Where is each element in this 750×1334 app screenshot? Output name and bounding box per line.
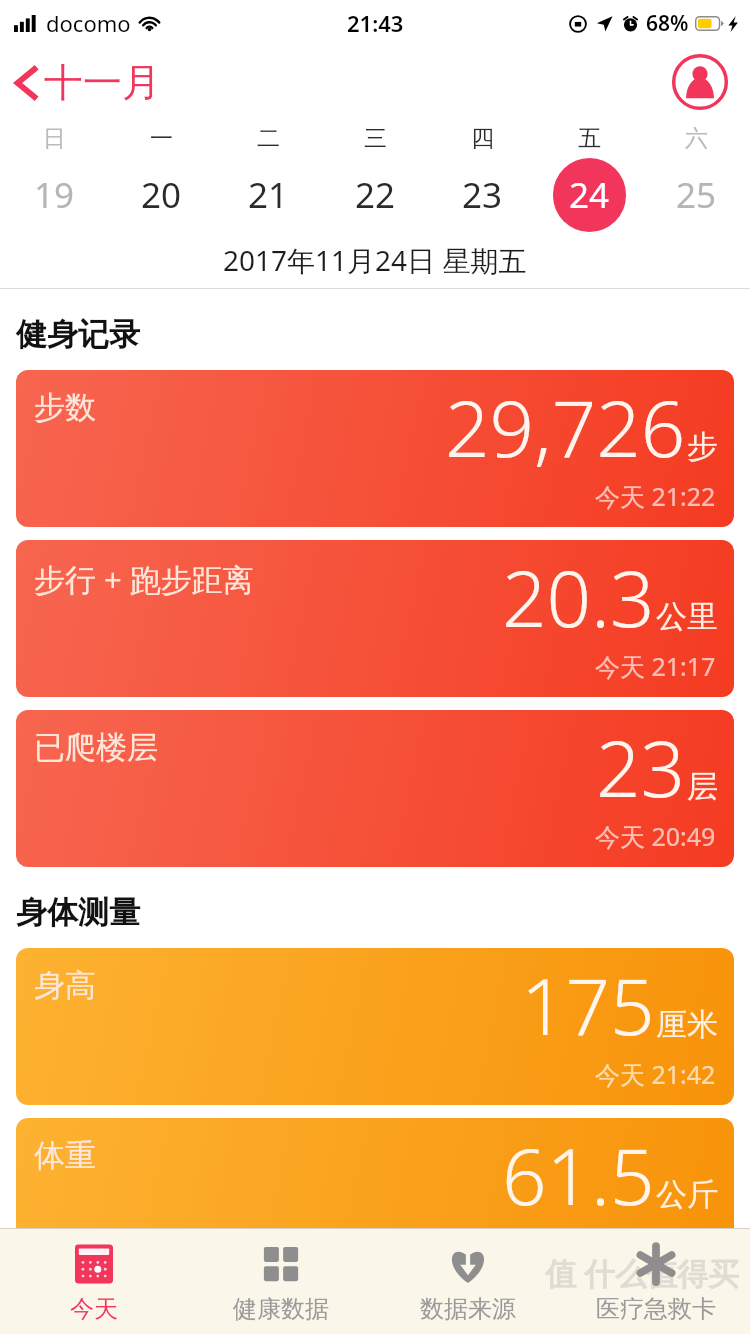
staticText: 23 bbox=[596, 714, 686, 820]
button[interactable]: 22 bbox=[322, 158, 429, 232]
staticText: 29,726 bbox=[445, 374, 686, 480]
staticText: 十一月 bbox=[44, 58, 161, 107]
staticText: 步行 + 跑步距离 bbox=[34, 558, 254, 600]
staticText: 25 bbox=[676, 171, 717, 219]
button[interactable]: 20 bbox=[108, 158, 215, 232]
staticText: 三 bbox=[364, 124, 387, 153]
staticText: 23 bbox=[462, 171, 503, 219]
staticText: 厘米 bbox=[656, 1005, 718, 1044]
staticText: 医疗急救卡 bbox=[596, 1294, 716, 1324]
staticText: 24 bbox=[569, 171, 610, 219]
button[interactable]: Profile bbox=[672, 54, 728, 110]
button[interactable]: 十一月 bbox=[12, 58, 161, 107]
button[interactable]: 19 bbox=[0, 158, 108, 232]
button[interactable]: 21 bbox=[215, 158, 322, 232]
staticText: 今天 21:22 bbox=[595, 479, 716, 513]
staticText: 61.5 bbox=[502, 1122, 655, 1228]
button[interactable]: 步行 + 跑步距离 bbox=[16, 540, 734, 697]
button[interactable]: 数据来源 bbox=[374, 1229, 562, 1334]
button[interactable]: 身高 bbox=[16, 948, 734, 1105]
button[interactable]: 体重 bbox=[16, 1118, 734, 1275]
staticText: 数据来源 bbox=[420, 1294, 516, 1324]
button[interactable]: 23 bbox=[429, 158, 536, 232]
button[interactable]: 步数 bbox=[16, 370, 734, 527]
staticText: 体重 bbox=[34, 1136, 96, 1175]
staticText: 四 bbox=[471, 124, 494, 153]
staticText: 日 bbox=[43, 124, 66, 153]
staticText: 健身记录 bbox=[16, 315, 140, 354]
staticText: 身体测量 bbox=[16, 893, 140, 932]
staticText: docomo bbox=[46, 8, 131, 38]
button[interactable]: 已爬楼层 bbox=[16, 710, 734, 867]
staticText: 步数 bbox=[34, 388, 96, 427]
staticText: 已爬楼层 bbox=[34, 728, 158, 767]
staticText: 21 bbox=[248, 171, 289, 219]
staticText: 今天 21:42 bbox=[595, 1227, 716, 1261]
staticText: 值 什么值得买 bbox=[545, 1252, 740, 1294]
button[interactable]: 医疗急救卡 bbox=[562, 1229, 750, 1334]
staticText: 今天 21:42 bbox=[595, 1057, 716, 1091]
staticText: 21:43 bbox=[347, 8, 404, 38]
staticText: 19 bbox=[34, 171, 75, 219]
staticText: 层 bbox=[687, 767, 718, 806]
staticText: 六 bbox=[685, 124, 708, 153]
staticText: 今天 21:17 bbox=[595, 649, 716, 683]
staticText: 今天 bbox=[70, 1294, 118, 1324]
staticText: 五 bbox=[578, 124, 601, 153]
staticText: 一 bbox=[150, 124, 173, 153]
staticText: 20 bbox=[141, 171, 182, 219]
staticText: 175 bbox=[521, 952, 655, 1058]
button[interactable]: 25 bbox=[643, 158, 750, 232]
staticText: 68% bbox=[646, 9, 689, 38]
staticText: 身高 bbox=[34, 966, 96, 1005]
staticText: 公斤 bbox=[656, 1175, 718, 1214]
staticText: 20.3 bbox=[502, 544, 655, 650]
button[interactable]: 今天 bbox=[0, 1229, 187, 1334]
staticText: 公里 bbox=[656, 597, 718, 636]
staticText: 22 bbox=[355, 171, 396, 219]
button[interactable]: 健康数据 bbox=[187, 1229, 374, 1334]
staticText: 2017年11月24日 星期五 bbox=[223, 241, 527, 279]
staticText: 步 bbox=[687, 427, 718, 466]
staticText: 健康数据 bbox=[233, 1294, 329, 1324]
staticText: 二 bbox=[257, 124, 280, 153]
button[interactable]: 24 bbox=[536, 158, 643, 232]
staticText: 今天 20:49 bbox=[595, 819, 716, 853]
